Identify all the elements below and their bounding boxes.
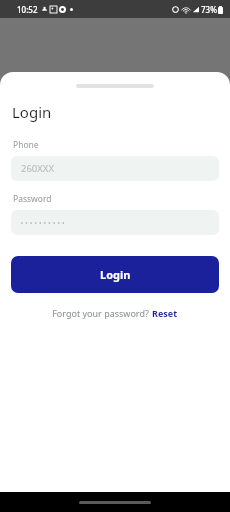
button[interactable]: Reset xyxy=(152,307,178,319)
staticText: Login xyxy=(12,102,52,122)
button[interactable]: Login xyxy=(11,256,219,293)
staticText: Forgot your password? xyxy=(52,307,149,319)
staticText: 10:52 xyxy=(17,4,38,15)
other: Home gesture xyxy=(79,501,151,504)
staticText: Phone xyxy=(13,139,39,151)
staticText: Password xyxy=(13,193,52,205)
button[interactable]: 260XXX xyxy=(11,156,219,181)
button[interactable] xyxy=(11,210,219,235)
staticText: Reset xyxy=(152,307,178,319)
staticText: 73% xyxy=(201,4,217,15)
staticText: 260XXX xyxy=(21,162,55,175)
staticText: Login xyxy=(100,267,131,282)
